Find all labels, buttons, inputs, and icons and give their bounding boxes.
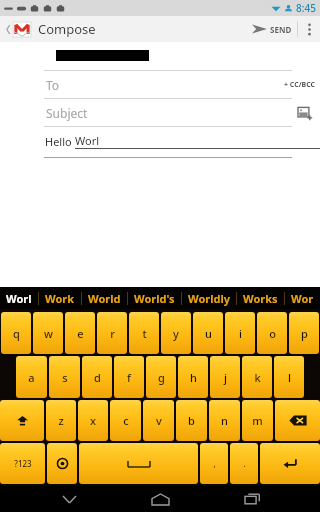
staticText: , <box>213 458 216 469</box>
staticText: a <box>28 370 35 385</box>
staticText: i <box>239 326 242 341</box>
staticText: g <box>158 370 165 385</box>
staticText: Work <box>45 291 75 306</box>
button[interactable]: h <box>178 356 208 398</box>
staticText: c <box>123 413 129 428</box>
staticText: e <box>77 326 84 341</box>
staticText: h <box>190 370 197 385</box>
other: Up <box>6 25 11 34</box>
button[interactable]: n <box>209 400 240 441</box>
staticText: World <box>88 291 121 306</box>
button[interactable]: Emoji <box>47 443 77 484</box>
button[interactable]: To <box>0 71 320 98</box>
staticText: Hello <box>45 134 75 149</box>
button[interactable]: World's <box>134 287 175 309</box>
staticText: p <box>301 326 308 341</box>
button[interactable]: Subject <box>0 99 290 126</box>
button[interactable]: c <box>110 400 141 441</box>
button[interactable]: j <box>210 356 240 398</box>
button[interactable]: v <box>143 400 174 441</box>
staticText: Worked <box>291 291 314 306</box>
button[interactable]: w <box>33 312 63 354</box>
button[interactable]: g <box>146 356 176 398</box>
staticText: Compose <box>38 20 96 38</box>
staticText: To <box>46 77 60 93</box>
staticText: SEND <box>270 24 292 35</box>
button[interactable]: q <box>1 312 31 354</box>
button[interactable]: b <box>176 400 207 441</box>
button[interactable]: a <box>16 356 47 398</box>
staticText: 8:45 <box>296 1 316 15</box>
staticText: s <box>62 370 68 385</box>
staticText: x <box>90 413 96 428</box>
staticText: m <box>252 413 263 428</box>
staticText: t <box>142 326 147 341</box>
staticText: n <box>221 413 228 428</box>
button[interactable]: e <box>65 312 95 354</box>
button[interactable]: . <box>230 443 258 484</box>
button[interactable]: Enter <box>260 443 320 484</box>
button[interactable]: m <box>242 400 273 441</box>
button[interactable]: s <box>49 356 80 398</box>
staticText: r <box>110 326 115 341</box>
button[interactable]: f <box>114 356 144 398</box>
button[interactable]: o <box>257 312 287 354</box>
staticText: Worl <box>6 291 32 306</box>
button[interactable]: Up <box>4 20 98 38</box>
button[interactable]: i <box>225 312 255 354</box>
button[interactable]: Attach image <box>290 99 320 126</box>
button[interactable]: Worked <box>291 287 314 309</box>
button[interactable]: Works <box>243 287 278 309</box>
staticText: v <box>156 413 162 428</box>
staticText: b <box>188 413 195 428</box>
button[interactable]: l <box>274 356 304 398</box>
button[interactable]: More options <box>298 16 320 42</box>
staticText: o <box>269 326 276 341</box>
staticText: w <box>44 326 53 341</box>
button[interactable]: Hello <box>0 127 320 158</box>
button[interactable]: Shift <box>0 400 44 441</box>
staticText: j <box>224 370 227 385</box>
button[interactable]: Worldly <box>188 287 230 309</box>
staticText: u <box>205 326 212 341</box>
button[interactable]: World <box>88 287 121 309</box>
button[interactable]: y <box>161 312 191 354</box>
staticText: Worl <box>75 133 100 148</box>
staticText: Subject <box>46 105 88 121</box>
staticText: ?123 <box>14 458 32 469</box>
staticText: f <box>127 370 131 385</box>
button[interactable]: Hide keyboard <box>46 486 92 512</box>
staticText: World's <box>134 291 175 306</box>
button[interactable]: z <box>46 400 76 441</box>
button[interactable]: d <box>82 356 112 398</box>
button[interactable]: Worl <box>6 287 32 309</box>
staticText: z <box>58 413 64 428</box>
button[interactable]: k <box>242 356 272 398</box>
button[interactable]: Delete <box>275 400 320 441</box>
button[interactable]: Work <box>45 287 75 309</box>
button[interactable]: Space <box>79 443 198 484</box>
button[interactable]: r <box>97 312 127 354</box>
staticText: Works <box>243 291 278 306</box>
staticText: k <box>254 370 261 385</box>
button[interactable]: Home <box>137 486 183 512</box>
button[interactable]: ?123 <box>0 443 45 484</box>
staticText: + CC/BCC <box>284 80 316 90</box>
staticText: l <box>288 370 291 385</box>
staticText: d <box>94 370 101 385</box>
button[interactable]: , <box>200 443 228 484</box>
staticText: . <box>243 458 246 469</box>
staticText: q <box>13 326 20 341</box>
button[interactable]: x <box>78 400 108 441</box>
button[interactable]: u <box>193 312 223 354</box>
button[interactable] <box>0 50 320 61</box>
staticText: y <box>173 326 179 341</box>
staticText: Worldly <box>188 291 230 306</box>
button[interactable]: t <box>129 312 159 354</box>
button[interactable]: Recent apps <box>229 486 275 512</box>
button[interactable]: SEND <box>247 16 297 42</box>
button[interactable]: p <box>289 312 319 354</box>
